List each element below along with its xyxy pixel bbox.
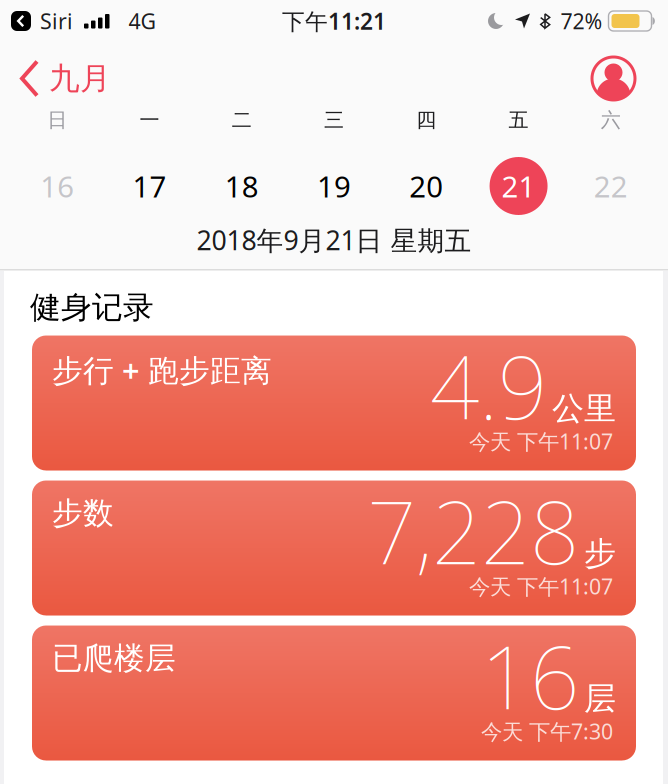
staticText: 下午11:21 bbox=[282, 6, 386, 36]
staticText: 步数 bbox=[52, 494, 114, 532]
staticText: 步 bbox=[584, 534, 616, 573]
staticText: 22 bbox=[594, 166, 628, 205]
button[interactable]: 16 bbox=[11, 157, 103, 215]
button[interactable]: 21 bbox=[472, 157, 565, 215]
staticText: 2018年9月21日 星期五 bbox=[196, 222, 471, 258]
staticText: Siri bbox=[40, 7, 73, 35]
staticText: 7,228 bbox=[367, 473, 579, 588]
button[interactable]: 19 bbox=[288, 157, 380, 215]
button[interactable]: 健康资料 bbox=[592, 57, 668, 100]
staticText: 72% bbox=[560, 7, 602, 35]
button[interactable]: 步数 bbox=[32, 480, 636, 615]
staticText: 四 bbox=[416, 108, 436, 132]
staticText: 20 bbox=[409, 166, 443, 205]
staticText: 16 bbox=[40, 166, 74, 205]
staticText: 日 bbox=[47, 108, 67, 132]
staticText: 层 bbox=[584, 679, 616, 718]
button[interactable]: 22 bbox=[565, 157, 657, 215]
staticText: 公里 bbox=[552, 389, 616, 428]
staticText: 4.9 bbox=[430, 328, 547, 443]
staticText: 4G bbox=[128, 7, 156, 35]
staticText: 二 bbox=[232, 108, 252, 132]
button[interactable]: 20 bbox=[380, 157, 472, 215]
staticText: 健身记录 bbox=[30, 289, 154, 326]
staticText: 今天 下午7:30 bbox=[481, 717, 613, 745]
staticText: 16 bbox=[481, 618, 579, 733]
staticText: 步行 + 跑步距离 bbox=[52, 349, 272, 390]
button[interactable]: 步行 + 跑步距离 bbox=[32, 335, 636, 470]
button[interactable]: 17 bbox=[103, 157, 196, 215]
staticText: 今天 下午11:07 bbox=[469, 427, 613, 455]
staticText: 18 bbox=[225, 166, 259, 205]
staticText: 今天 下午11:07 bbox=[469, 572, 613, 600]
staticText: 21 bbox=[502, 166, 536, 205]
staticText: 三 bbox=[324, 108, 344, 132]
staticText: 已爬楼层 bbox=[52, 639, 176, 677]
button[interactable]: 返回九月 bbox=[0, 59, 111, 97]
button[interactable]: 18 bbox=[196, 157, 288, 215]
staticText: 17 bbox=[132, 166, 166, 205]
staticText: 19 bbox=[317, 166, 351, 205]
button[interactable]: 已爬楼层 bbox=[32, 625, 636, 760]
staticText: 一 bbox=[139, 108, 159, 132]
staticText: 五 bbox=[509, 108, 529, 132]
staticText: 九月 bbox=[49, 60, 111, 97]
staticText: 六 bbox=[601, 108, 621, 132]
